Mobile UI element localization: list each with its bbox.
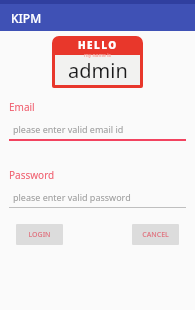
button[interactable]: please enter valid password — [9, 191, 186, 208]
staticText: Password — [9, 168, 55, 182]
staticText: KIPM — [11, 10, 42, 26]
staticText: CANCEL — [142, 230, 169, 240]
button[interactable]: CANCEL — [132, 224, 179, 245]
staticText: LOGIN — [28, 230, 51, 240]
staticText: HELLO — [78, 38, 118, 52]
staticText: my name is — [84, 52, 111, 59]
staticText: please enter valid email id — [13, 123, 124, 135]
staticText: please enter valid password — [13, 191, 131, 203]
staticText: Email — [9, 100, 35, 114]
other: Hello my name is admin badge — [52, 36, 143, 88]
button[interactable]: please enter valid email id — [9, 123, 186, 141]
button[interactable]: LOGIN — [16, 224, 63, 245]
staticText: admin — [68, 57, 128, 84]
